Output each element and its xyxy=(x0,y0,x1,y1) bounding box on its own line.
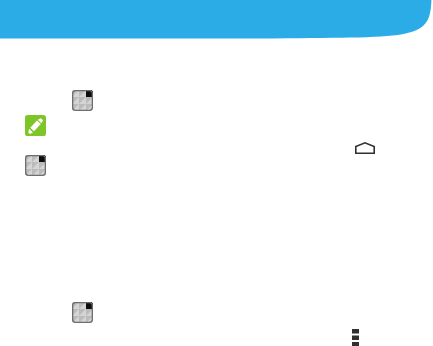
button[interactable]: Open picture xyxy=(25,155,46,176)
button[interactable]: More options xyxy=(352,329,359,346)
button[interactable]: Open picture xyxy=(72,90,93,111)
button[interactable]: Edit xyxy=(25,115,46,136)
button[interactable]: Home xyxy=(355,142,375,154)
button[interactable]: Open picture xyxy=(72,302,93,323)
